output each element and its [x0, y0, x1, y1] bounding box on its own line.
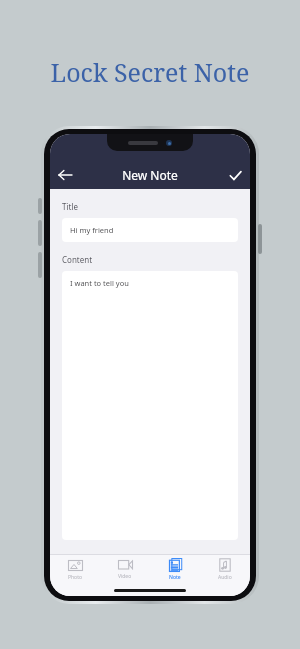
staticText: Content: [62, 254, 93, 265]
button[interactable]: Photo: [50, 555, 100, 584]
staticText: Photo: [68, 574, 82, 581]
button[interactable]: Video: [100, 555, 150, 584]
button[interactable]: Note: [150, 555, 200, 584]
button[interactable]: Hi my friend: [62, 218, 238, 242]
staticText: Title: [62, 201, 78, 212]
staticText: Video: [118, 573, 132, 580]
staticText: Audio: [218, 574, 232, 581]
staticText: New Note: [80, 167, 220, 183]
button[interactable]: Back: [50, 161, 80, 189]
staticText: I want to tell you: [70, 278, 129, 288]
staticText: Hi my friend: [70, 225, 114, 235]
button[interactable]: Audio: [200, 555, 250, 584]
button[interactable]: I want to tell you: [62, 271, 238, 540]
button[interactable]: Save note: [220, 161, 250, 189]
staticText: Note: [169, 574, 181, 581]
staticText: Lock Secret Note: [0, 55, 300, 89]
